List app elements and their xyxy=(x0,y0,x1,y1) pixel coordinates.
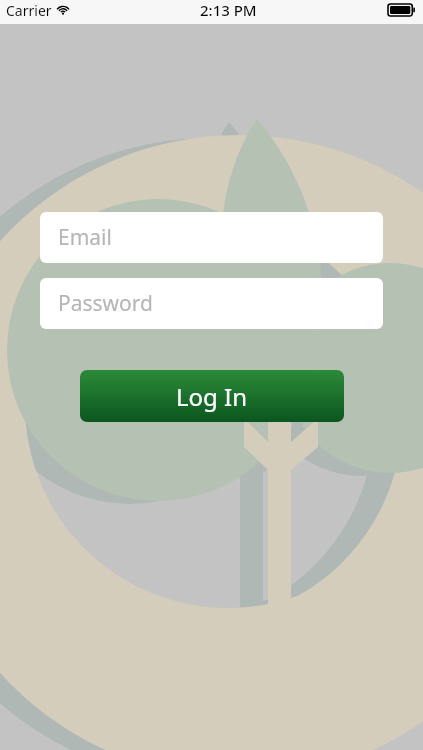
button[interactable]: Log In xyxy=(80,370,344,422)
staticText: Password xyxy=(58,289,153,318)
button[interactable]: Email xyxy=(40,212,383,263)
staticText: Email xyxy=(58,223,112,252)
staticText: 2:13 PM xyxy=(200,0,257,20)
staticText: Log In xyxy=(176,380,248,413)
button[interactable]: Password xyxy=(40,278,383,329)
staticText: Carrier xyxy=(6,1,52,20)
